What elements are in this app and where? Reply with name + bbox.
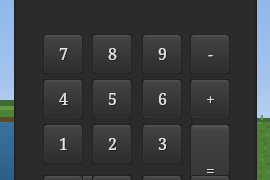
staticText: 1 <box>60 134 69 156</box>
staticText: 6 <box>158 88 167 110</box>
button[interactable]: 3 <box>142 124 182 164</box>
button[interactable]: . <box>142 175 182 180</box>
staticText: 7 <box>59 43 68 65</box>
staticText: 3 <box>159 134 168 156</box>
button[interactable]: 8 <box>92 34 132 74</box>
staticText: 4 <box>60 89 69 111</box>
button[interactable]: 9 <box>142 34 182 74</box>
button[interactable]: 2 <box>92 124 132 164</box>
button[interactable]: 5 <box>92 79 132 119</box>
staticText: - <box>208 44 213 64</box>
button[interactable]: 4 <box>43 79 83 119</box>
button[interactable]: 6 <box>142 79 182 119</box>
staticText: + <box>206 89 215 109</box>
staticText: 4 <box>59 88 68 110</box>
staticText: 8 <box>109 44 118 66</box>
button[interactable] <box>190 175 230 180</box>
button[interactable]: 0 <box>43 175 132 180</box>
button[interactable]: - <box>190 34 230 74</box>
button[interactable] <box>142 175 182 180</box>
button[interactable]: + <box>190 79 230 119</box>
staticText: 1 <box>59 133 68 155</box>
button[interactable]: 7 <box>43 34 83 74</box>
staticText: 5 <box>109 89 118 111</box>
staticText: 3 <box>158 133 167 155</box>
staticText: 8 <box>108 43 117 65</box>
staticText: 2 <box>109 134 118 156</box>
staticText: = <box>206 160 215 180</box>
staticText: = <box>207 161 216 180</box>
staticText: 5 <box>108 88 117 110</box>
button[interactable] <box>43 175 83 180</box>
staticText: 9 <box>158 43 167 65</box>
staticText: - <box>209 45 214 65</box>
staticText: 6 <box>159 89 168 111</box>
button[interactable] <box>92 175 132 180</box>
staticText: 9 <box>159 44 168 66</box>
staticText: + <box>207 90 216 110</box>
button[interactable]: = <box>190 124 230 180</box>
button[interactable]: 1 <box>43 124 83 164</box>
staticText: 2 <box>108 133 117 155</box>
staticText: 7 <box>60 44 69 66</box>
